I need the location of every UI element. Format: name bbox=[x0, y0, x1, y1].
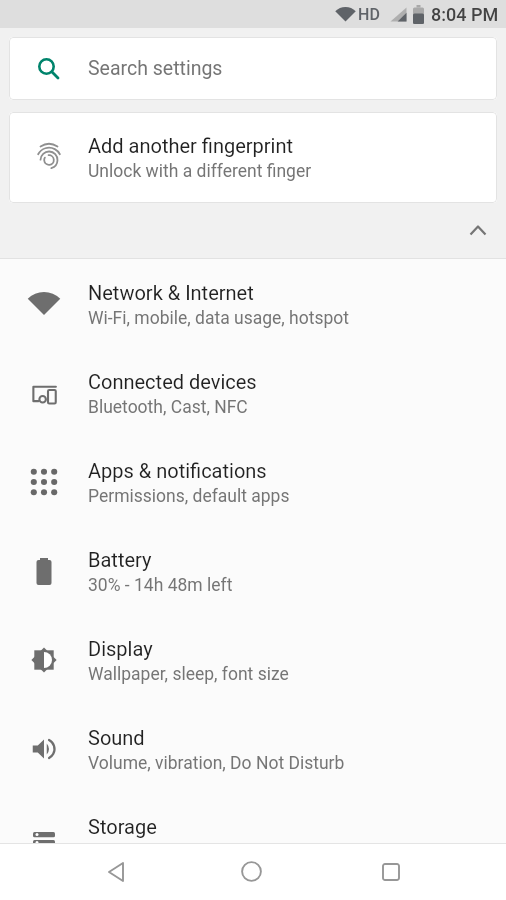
button[interactable] bbox=[0, 203, 506, 258]
button[interactable]: Connected devices bbox=[0, 348, 506, 437]
staticText: Search settings bbox=[88, 57, 223, 80]
button[interactable]: Network & Internet bbox=[0, 259, 506, 348]
staticText: 8:04 PM bbox=[431, 4, 499, 25]
staticText: Unlock with a different finger bbox=[88, 161, 312, 182]
staticText: Volume, vibration, Do Not Disturb bbox=[88, 753, 345, 774]
staticText: Bluetooth, Cast, NFC bbox=[88, 397, 248, 418]
button[interactable] bbox=[224, 844, 279, 899]
staticText: Add another fingerprint bbox=[88, 134, 293, 157]
staticText: 30% - 14h 48m left bbox=[88, 575, 233, 596]
staticText: Wallpaper, sleep, font size bbox=[88, 664, 289, 685]
staticText: Connected devices bbox=[88, 370, 257, 393]
button[interactable] bbox=[363, 844, 418, 899]
staticText: Apps & notifications bbox=[88, 459, 267, 482]
staticText: Display bbox=[88, 637, 153, 660]
staticText: Permissions, default apps bbox=[88, 486, 290, 507]
button[interactable]: Search settings bbox=[9, 37, 497, 100]
button[interactable]: Sound bbox=[0, 704, 506, 793]
button[interactable]: Apps & notifications bbox=[0, 437, 506, 526]
staticText: HD bbox=[358, 5, 380, 24]
staticText: Wi-Fi, mobile, data usage, hotspot bbox=[88, 308, 350, 329]
staticText: Sound bbox=[88, 726, 145, 749]
staticText: Network & Internet bbox=[88, 281, 254, 304]
staticText: Storage bbox=[88, 815, 157, 838]
button[interactable]: Display bbox=[0, 615, 506, 704]
button[interactable]: Add another fingerprint bbox=[9, 112, 497, 203]
button[interactable]: Battery bbox=[0, 526, 506, 615]
button[interactable]: Storage bbox=[0, 793, 506, 843]
staticText: Battery bbox=[88, 548, 152, 571]
button[interactable] bbox=[88, 844, 143, 899]
